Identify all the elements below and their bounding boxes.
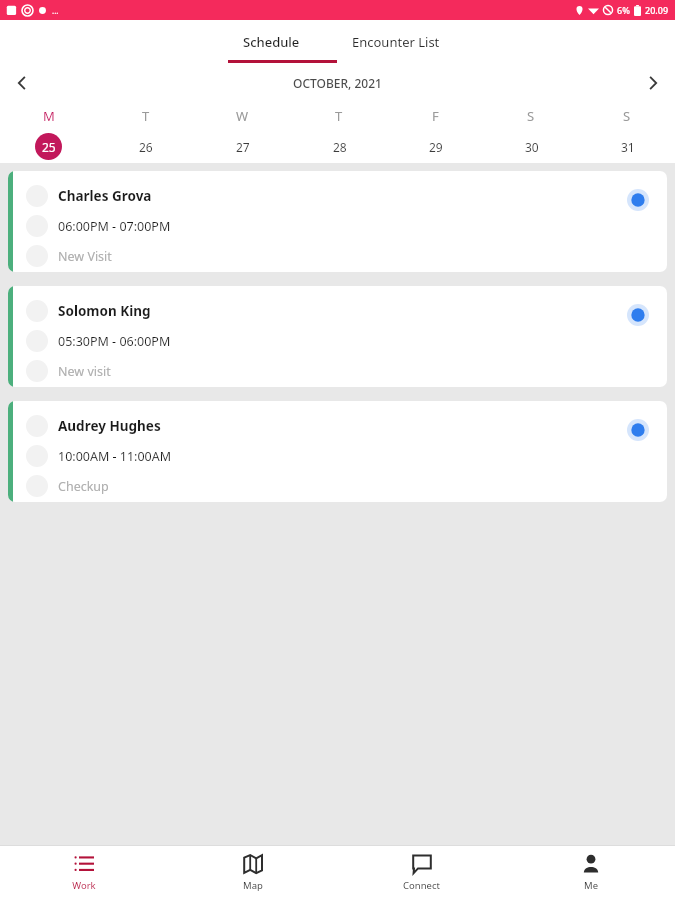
button[interactable]: Previous month (0, 63, 44, 103)
staticText: 06:00PM - 07:00PM (58, 218, 171, 235)
staticText: New visit (58, 363, 111, 380)
button[interactable]: Connect (337, 845, 506, 900)
staticText: Solomon King (58, 302, 151, 320)
staticText: 28 (333, 139, 347, 155)
staticText: OCTOBER, 2021 (293, 75, 382, 91)
button[interactable]: Solomon King (8, 286, 667, 387)
staticText: 25 (42, 139, 56, 155)
staticText: Map (243, 879, 263, 892)
button[interactable]: W (194, 103, 291, 163)
staticText: 10:00AM - 11:00AM (58, 448, 172, 465)
staticText: New Visit (58, 248, 112, 265)
staticText: 6% (617, 4, 630, 16)
button[interactable]: F (387, 103, 483, 163)
button[interactable]: S (483, 103, 579, 163)
staticText: 30 (525, 139, 539, 155)
button[interactable]: S (579, 103, 675, 163)
button[interactable]: Schedule (215, 20, 327, 63)
staticText: Checkup (58, 478, 109, 495)
staticText: Audrey Hughes (58, 417, 161, 435)
staticText: F (432, 107, 439, 125)
button[interactable]: T (291, 103, 387, 163)
staticText: 27 (236, 139, 250, 155)
staticText: Charles Grova (58, 187, 152, 205)
button[interactable]: Map (168, 845, 337, 900)
staticText: Encounter List (352, 33, 440, 51)
staticText: M (43, 107, 55, 125)
staticText: Connect (403, 879, 440, 892)
button[interactable]: Audrey Hughes (8, 401, 667, 502)
staticText: Me (584, 879, 598, 892)
button[interactable]: Me (506, 845, 675, 900)
button[interactable]: Next month (631, 63, 675, 103)
button[interactable]: Charles Grova (8, 171, 667, 272)
staticText: 20.09 (645, 4, 669, 16)
staticText: S (623, 107, 631, 125)
staticText: T (142, 107, 150, 125)
staticText: T (335, 107, 343, 125)
button[interactable]: T (97, 103, 194, 163)
staticText: Schedule (243, 33, 300, 51)
staticText: Work (72, 879, 96, 892)
staticText: 29 (429, 139, 443, 155)
staticText: W (236, 107, 249, 125)
button[interactable]: Work (0, 845, 168, 900)
button[interactable]: M (0, 103, 97, 163)
button[interactable]: Encounter List (331, 20, 461, 63)
staticText: 26 (139, 139, 153, 155)
staticText: S (527, 107, 535, 125)
staticText: 05:30PM - 06:00PM (58, 333, 171, 350)
staticText: ... (52, 5, 59, 16)
staticText: 31 (621, 139, 635, 155)
